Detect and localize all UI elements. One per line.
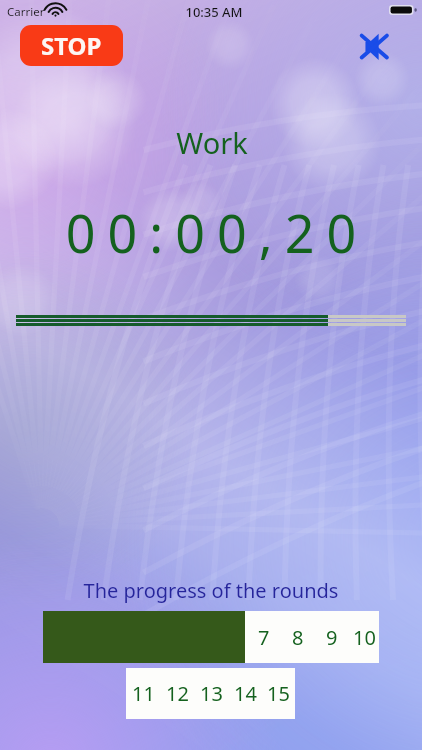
staticText: 13 [200, 680, 223, 707]
staticText: 7 [258, 624, 270, 651]
staticText: The progress of the rounds [0, 577, 422, 604]
staticText: 8 [292, 624, 304, 651]
staticText: 00:00,20 [6, 197, 422, 268]
staticText: Carrier [7, 4, 45, 20]
button[interactable]: Unmute sound [351, 24, 396, 69]
staticText: 12 [166, 680, 189, 707]
staticText: 15 [267, 680, 290, 707]
button[interactable] [16, 315, 406, 327]
staticText: 10:35 AM [3, 3, 422, 21]
staticText: 10 [353, 624, 376, 651]
button[interactable]: 7 [43, 611, 379, 663]
staticText: 14 [234, 680, 257, 707]
staticText: Work [1, 123, 422, 162]
button[interactable]: 11 [126, 668, 295, 719]
staticText: 11 [132, 680, 155, 707]
button[interactable]: STOP [20, 25, 123, 66]
staticText: 9 [326, 624, 338, 651]
staticText: STOP [41, 29, 102, 62]
